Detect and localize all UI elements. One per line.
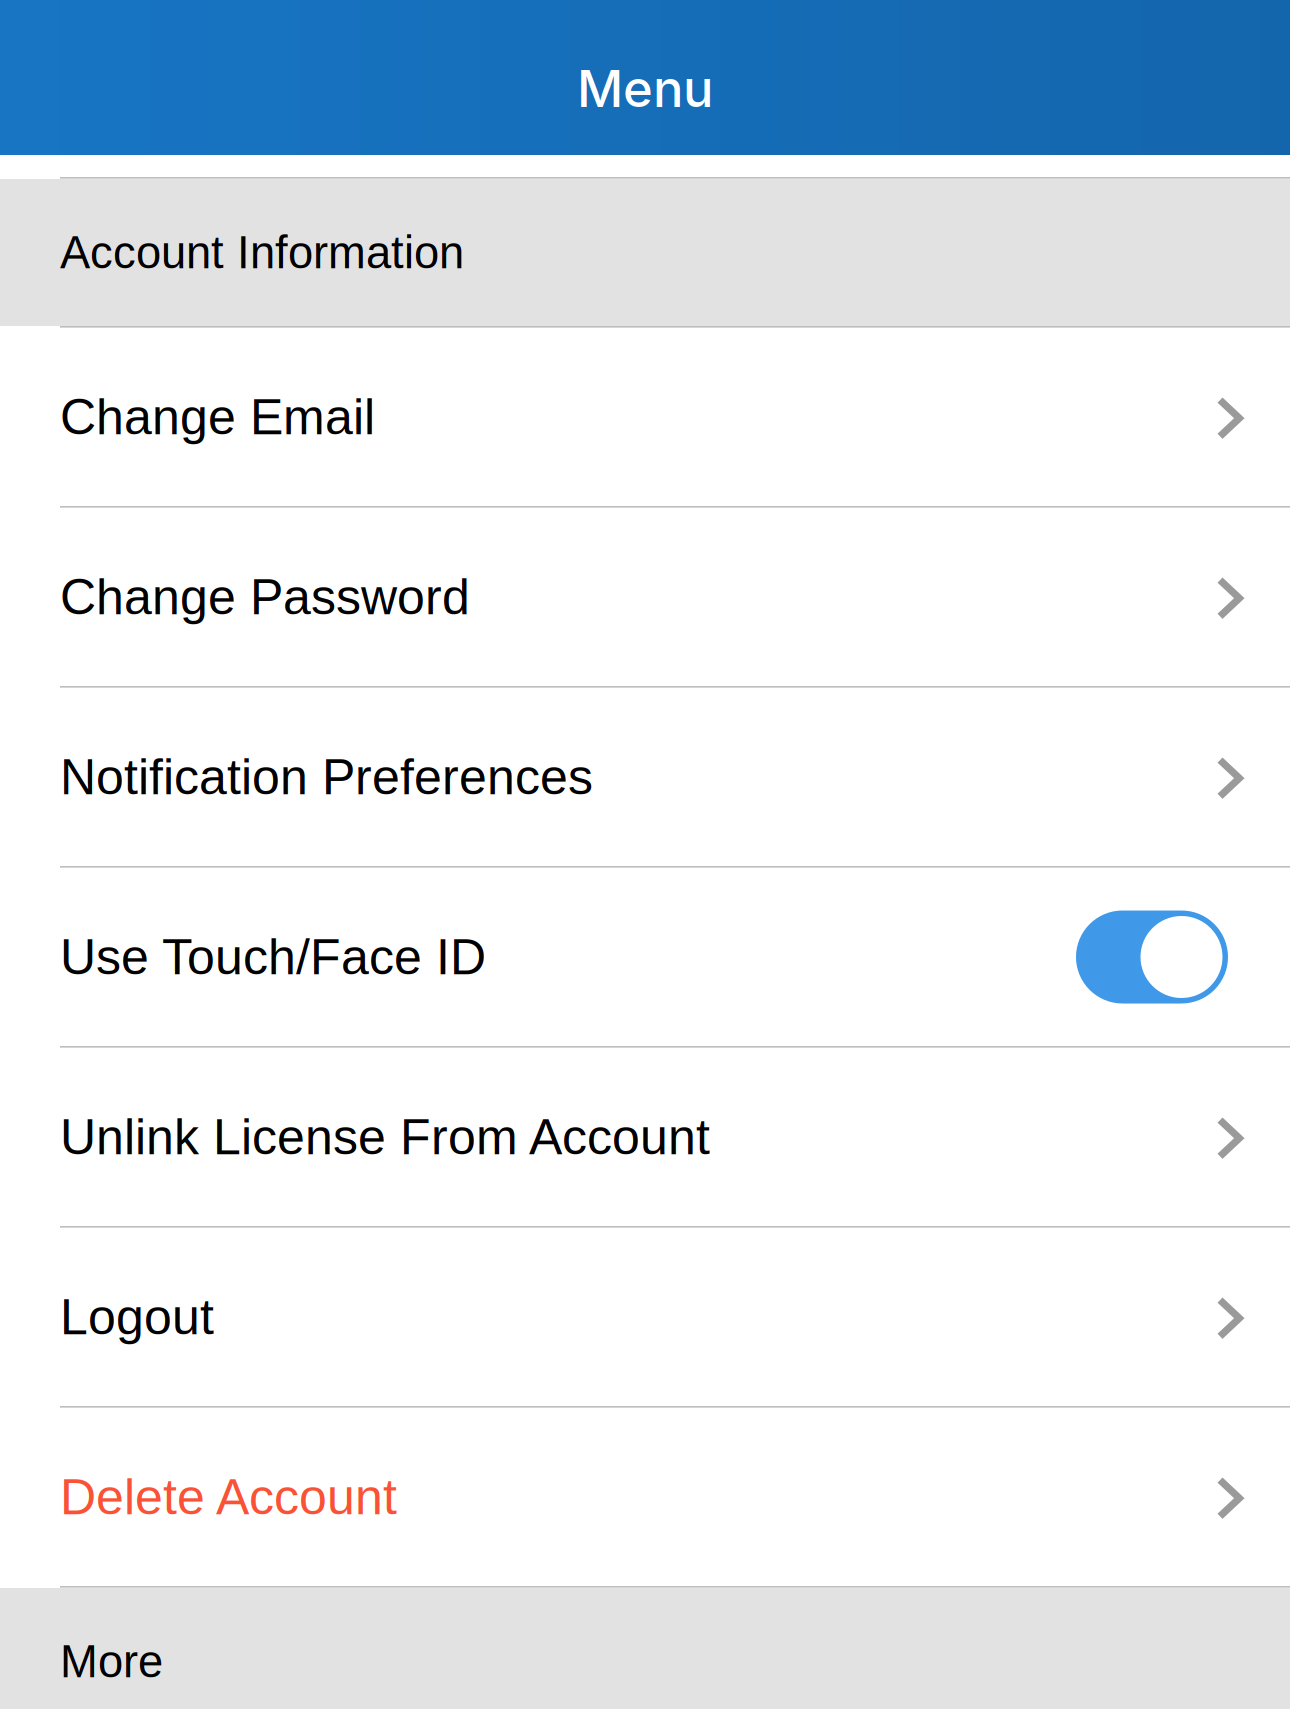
button[interactable]: Unlink License From Account xyxy=(0,1048,1290,1226)
staticText: Use Touch/Face ID xyxy=(60,929,486,985)
button[interactable]: Change Email xyxy=(0,328,1290,506)
staticText: Account Information xyxy=(60,227,464,278)
button[interactable]: Logout xyxy=(0,1228,1290,1406)
button[interactable]: Change Password xyxy=(0,508,1290,686)
button[interactable]: Delete Account xyxy=(0,1408,1290,1586)
staticText: Logout xyxy=(60,1289,214,1345)
staticText: More xyxy=(60,1636,163,1687)
staticText: Notification Preferences xyxy=(60,749,593,805)
button[interactable]: Use Touch/Face ID, on xyxy=(1076,910,1228,1003)
staticText: Change Password xyxy=(60,569,470,625)
staticText: Menu xyxy=(577,58,713,119)
button[interactable]: Use Touch/Face ID xyxy=(0,868,1290,1046)
staticText: Unlink License From Account xyxy=(60,1109,710,1165)
button[interactable]: Notification Preferences xyxy=(0,688,1290,866)
staticText: Delete Account xyxy=(60,1469,397,1525)
staticText: Change Email xyxy=(60,389,375,445)
